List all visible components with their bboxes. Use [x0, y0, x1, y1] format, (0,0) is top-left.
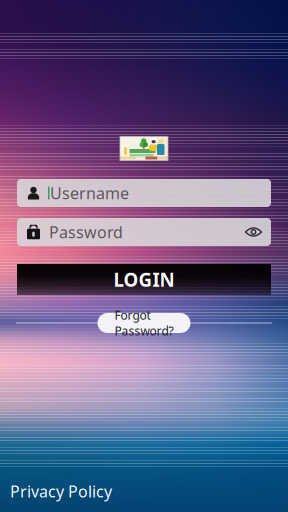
button[interactable]: Forgot Password?: [97, 313, 190, 333]
staticText: Forgot Password?: [114, 307, 173, 339]
staticText: LOGIN: [113, 267, 174, 292]
button[interactable]: Privacy Policy: [10, 481, 112, 502]
staticText: Password: [49, 221, 123, 243]
button[interactable]: Username: [17, 179, 271, 207]
staticText: Privacy Policy: [10, 481, 112, 502]
button[interactable]: Password: [17, 218, 271, 246]
button[interactable]: LOGIN: [17, 264, 271, 295]
staticText: Username: [50, 182, 129, 204]
